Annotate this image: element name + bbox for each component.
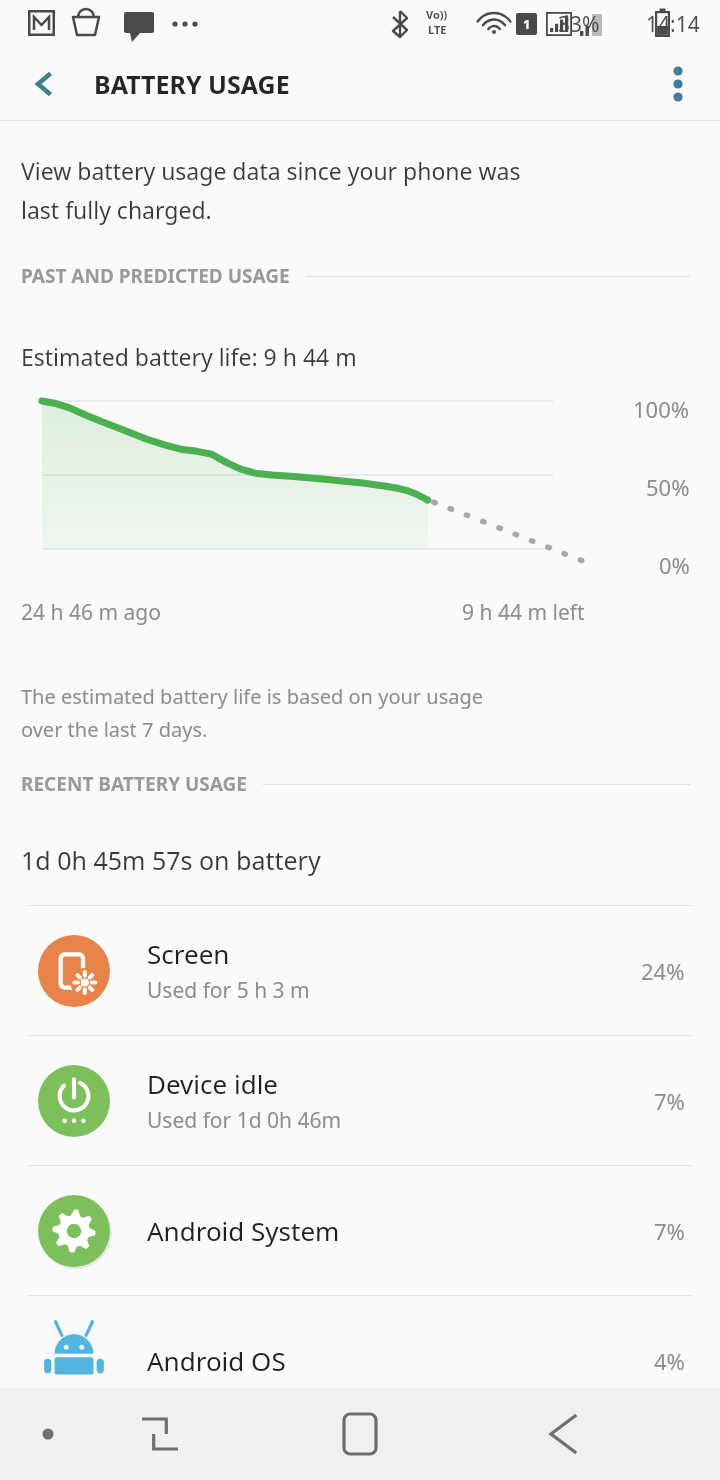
button[interactable]: More options [650, 56, 706, 112]
staticText: 7% [654, 1216, 685, 1246]
staticText: 100% [633, 394, 690, 424]
staticText: 50% [646, 472, 690, 502]
staticText: View battery usage data since your phone… [21, 155, 521, 186]
staticText: Device idle [147, 1066, 279, 1101]
button[interactable]: Back [16, 56, 72, 112]
staticText: 14:14 [646, 10, 700, 39]
staticText: 33% [558, 10, 600, 39]
staticText: Android System [147, 1213, 340, 1248]
button[interactable]: Recents [180, 1388, 360, 1480]
staticText: 0% [659, 550, 690, 580]
staticText: 24% [641, 956, 685, 986]
staticText: The estimated battery life is based on y… [21, 683, 484, 710]
button[interactable]: Back [540, 1388, 720, 1480]
button[interactable]: Android System [0, 1166, 720, 1295]
staticText: over the last 7 days. [21, 716, 208, 743]
staticText: Estimated battery life: 9 h 44 m [21, 341, 357, 372]
staticText: Vo)) [426, 7, 448, 22]
staticText: 1d 0h 45m 57s on battery [21, 843, 321, 877]
button[interactable]: Home [360, 1388, 540, 1480]
staticText: 7% [654, 1086, 685, 1116]
staticText: BATTERY USAGE [94, 67, 290, 101]
staticText: last fully charged. [21, 194, 212, 225]
button[interactable]: Android OS [0, 1296, 720, 1425]
staticText: Used for 1d 0h 46m [147, 1106, 342, 1135]
staticText: 9 h 44 m left [462, 598, 585, 627]
staticText: 24 h 46 m ago [21, 598, 161, 627]
staticText: 4% [654, 1346, 685, 1376]
staticText: Used for 5 h 3 m [147, 976, 310, 1005]
staticText: Screen [147, 936, 230, 971]
staticText: LTE [428, 22, 447, 37]
staticText: RECENT BATTERY USAGE [21, 771, 247, 797]
staticText: Android OS [147, 1343, 286, 1378]
staticText: PAST AND PREDICTED USAGE [21, 263, 290, 289]
button[interactable]: Device idle [0, 1036, 720, 1165]
staticText: 1 [523, 15, 531, 33]
button[interactable]: Screen [0, 906, 720, 1035]
